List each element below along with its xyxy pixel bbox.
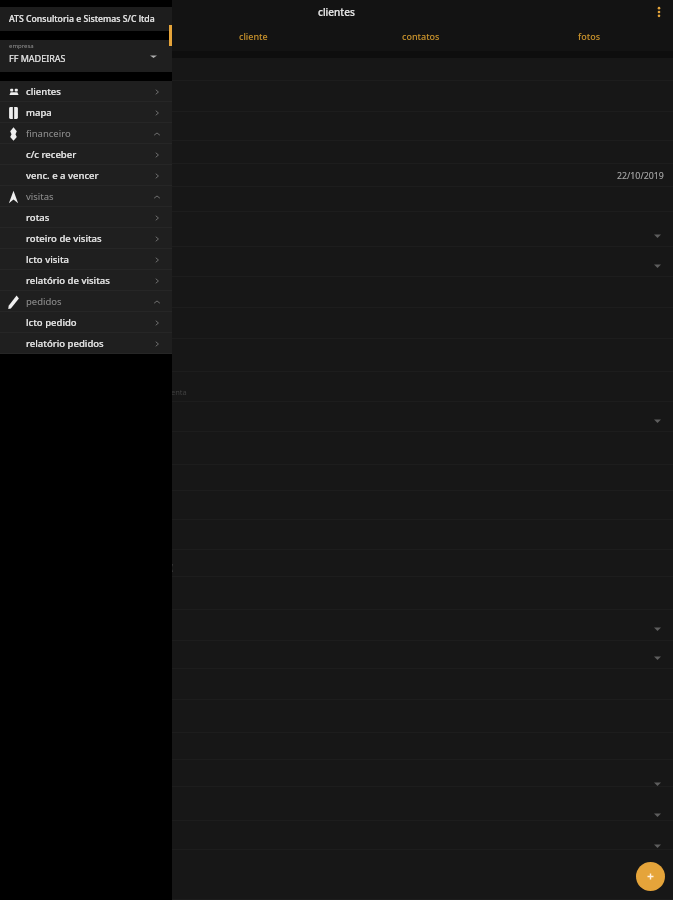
button[interactable] [0,821,673,850]
staticText: 22/10/2019 [617,170,664,182]
button[interactable]: financeiro [0,123,172,144]
button[interactable] [0,247,673,277]
button[interactable] [0,733,673,760]
staticText: clientes [318,5,355,19]
staticText: lcto pedido [26,316,77,329]
staticText: ATS Consultoria e Sistemas S/C ltda [9,13,155,25]
button[interactable]: clientes [0,81,172,102]
button[interactable] [0,112,673,141]
staticText: fotos [578,30,601,42]
button[interactable]: cliente [169,26,337,46]
button[interactable] [0,700,673,733]
button[interactable]: lcto pedido [0,312,172,333]
staticText: relatório de visitas [26,274,110,287]
button[interactable]: rotas [0,26,169,46]
button[interactable] [0,339,673,372]
button[interactable] [0,277,673,308]
staticText: lcto visita [26,253,69,266]
staticText: relatório pedidos [26,337,104,350]
button[interactable] [0,760,673,787]
button[interactable]: visitas [0,186,172,207]
button[interactable]: venc. e a vencer [0,165,172,186]
button[interactable] [0,81,673,112]
button[interactable]: c/c receber [0,144,172,165]
button[interactable]: roteiro de visitas [0,228,172,249]
button[interactable] [0,308,673,339]
staticText: contatos [402,30,440,42]
staticText: c/c receber [26,148,77,161]
button[interactable]: fotos [505,26,673,46]
button[interactable] [0,432,673,465]
button[interactable] [0,141,673,164]
staticText: pedidos [26,295,62,308]
button[interactable]: rotas [0,207,172,228]
button[interactable]: relatório pedidos [0,333,172,354]
button[interactable]: lcto visita [0,249,172,270]
staticText: enta [171,387,187,397]
button[interactable] [0,669,673,700]
button[interactable]: pedidos [0,291,172,312]
button[interactable] [0,577,673,610]
staticText: roteiro de visitas [26,232,102,245]
button[interactable] [0,491,673,520]
button[interactable]: contatos [337,26,505,46]
staticText: visitas [26,190,54,203]
button[interactable]: More options [650,3,668,21]
button[interactable] [0,787,673,821]
button[interactable] [0,212,673,247]
staticText: clientes [26,85,61,98]
button[interactable] [0,520,673,550]
staticText: cliente [239,30,268,42]
button[interactable]: 22/10/2019 [0,164,673,187]
button[interactable] [0,187,673,212]
button[interactable] [0,850,673,900]
button[interactable] [0,641,673,669]
button[interactable]: mapa [0,102,172,123]
staticText: mapa [26,106,52,119]
staticText: ( [171,562,174,573]
button[interactable] [0,402,673,432]
button[interactable] [0,610,673,641]
staticText: FF MADEIRAS [9,52,66,64]
button[interactable] [0,58,673,81]
button[interactable]: Add [636,862,665,891]
staticText: rotas [73,30,96,42]
button[interactable]: relatório de visitas [0,270,172,291]
staticText: venc. e a vencer [26,169,99,182]
staticText: financeiro [26,127,71,140]
button[interactable] [0,465,673,491]
staticText: rotas [26,211,50,224]
staticText: empresa [9,42,34,50]
button[interactable]: ( [0,550,673,577]
button[interactable]: enta [0,372,673,402]
